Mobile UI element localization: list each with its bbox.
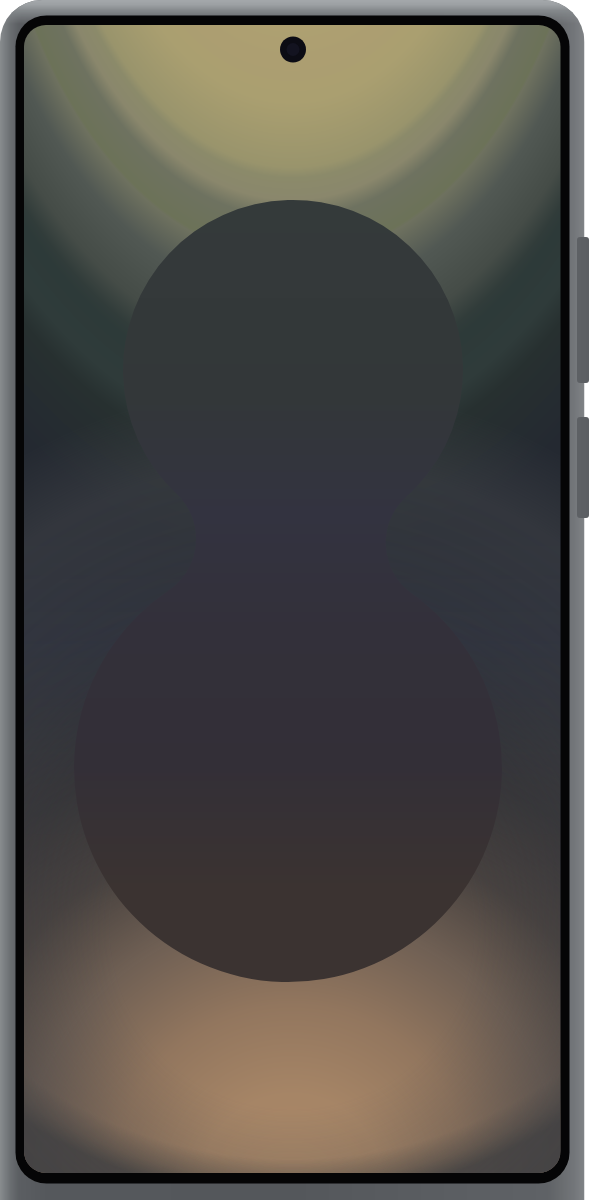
button[interactable]: Smartphone product photo xyxy=(0,0,589,1200)
